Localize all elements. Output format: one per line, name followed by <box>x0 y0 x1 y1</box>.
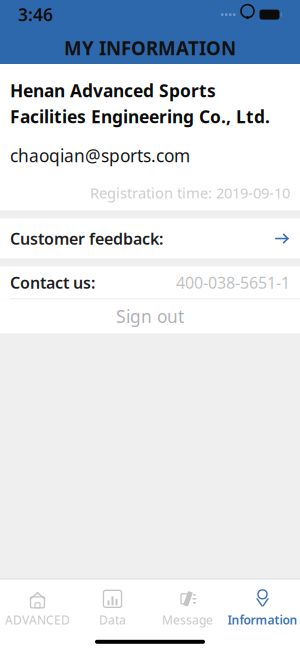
staticText: 400-038-5651-1 <box>176 272 290 293</box>
staticText: Contact us: <box>10 272 95 293</box>
button[interactable]: Sign out <box>0 299 300 333</box>
button[interactable]: Data <box>75 585 150 632</box>
staticText: Customer feedback: <box>10 228 163 249</box>
staticText: chaoqian@sports.com <box>10 144 190 167</box>
button[interactable]: Customer feedback: <box>0 218 300 258</box>
staticText: Registration time: 2019-09-10 <box>90 183 290 203</box>
button[interactable]: ADVANCED <box>0 585 75 632</box>
staticText: ADVANCED <box>5 612 70 628</box>
staticText: Message <box>162 612 213 628</box>
staticText: 3:46 <box>18 3 53 26</box>
button[interactable]: Information <box>225 585 300 632</box>
staticText: Information <box>227 612 297 628</box>
staticText: Henan Advanced Sports Facilities Enginee… <box>10 79 270 128</box>
staticText: Sign out <box>116 305 184 328</box>
staticText: Data <box>99 612 126 628</box>
button[interactable]: Message <box>150 585 225 632</box>
button[interactable]: Contact us: <box>0 266 300 299</box>
staticText: MY INFORMATION <box>64 36 236 60</box>
